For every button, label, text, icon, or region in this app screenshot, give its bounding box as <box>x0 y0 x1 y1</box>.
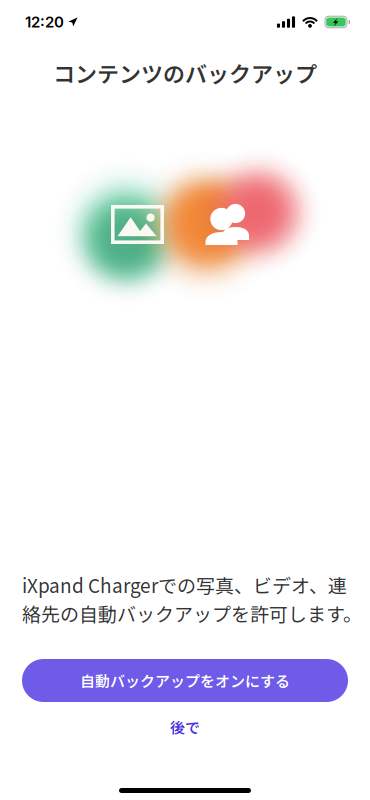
staticText: 12:20 <box>25 13 64 31</box>
staticText: 絡先の自動バックアップを許可します。 <box>22 599 362 627</box>
button[interactable]: 自動バックアップをオンにする <box>22 659 348 702</box>
staticText: コンテンツのバックアップ <box>53 57 317 89</box>
staticText: iXpand Chargerでの写真、ビデオ、連 <box>22 571 347 598</box>
button[interactable]: 後で <box>0 715 370 739</box>
staticText: 自動バックアップをオンにする <box>80 670 290 691</box>
staticText: 後で <box>170 716 200 738</box>
